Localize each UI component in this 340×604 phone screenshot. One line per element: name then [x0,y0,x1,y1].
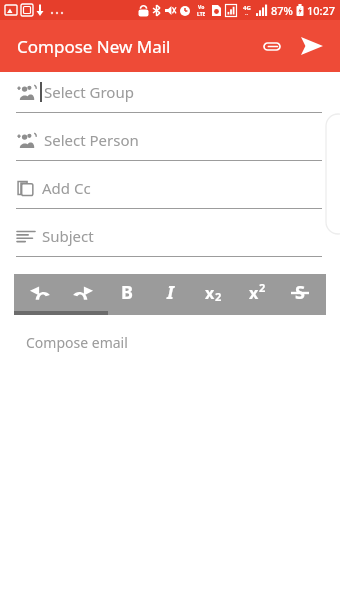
button[interactable]: Strikethrough [280,274,320,311]
staticText: Add Cc [42,178,91,198]
staticText: x [205,282,215,304]
button[interactable]: Send [292,26,332,66]
staticText: 2 [215,289,222,304]
staticText: Vo [198,4,205,11]
button[interactable]: Superscript [237,274,277,311]
staticText: Compose email [26,333,128,352]
button[interactable]: Bold [107,274,147,311]
button[interactable]: Compose email [0,331,340,371]
button[interactable]: Undo [20,274,60,311]
staticText: Select Person [44,130,139,150]
button[interactable]: Select Person [0,120,340,168]
staticText: 4G [243,4,251,12]
staticText: B [121,280,133,305]
staticText: .. [245,9,249,17]
staticText: Select Group [44,82,134,102]
button[interactable]: Redo [63,274,103,311]
button[interactable]: Italic [150,274,190,311]
staticText: LTE [197,11,206,17]
button[interactable]: Attach file [252,26,292,66]
staticText: x [249,282,259,304]
staticText: I [167,280,174,305]
button[interactable]: Add Cc [0,168,340,216]
button[interactable]: Subject [0,216,340,264]
staticText: 2 [259,280,266,295]
staticText: S [295,280,305,305]
button[interactable]: Select Group [0,72,340,120]
button[interactable]: Subscript [193,274,233,311]
staticText: Subject [42,226,94,246]
staticText: 10:27 [307,3,336,18]
staticText: 87% [271,3,293,18]
staticText: Compose New Mail [17,35,171,58]
